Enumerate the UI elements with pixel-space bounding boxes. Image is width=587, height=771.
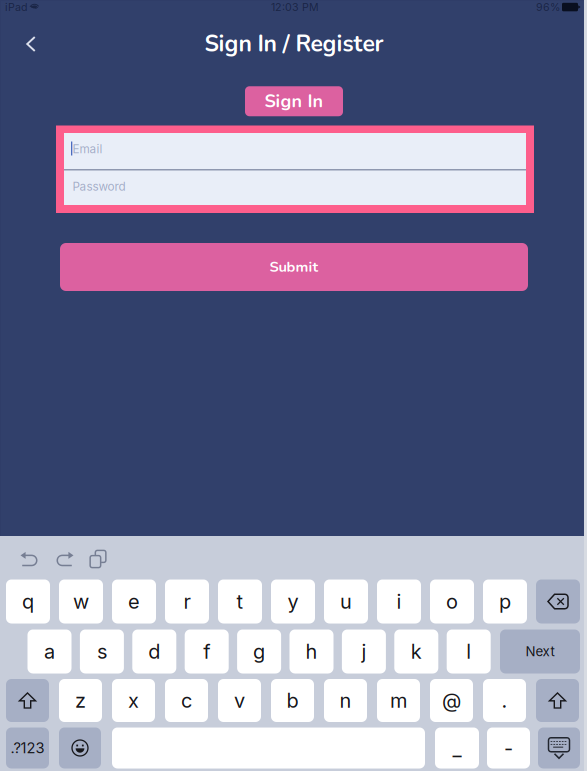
staticText: i [396,589,401,614]
button[interactable]: @ [430,679,473,722]
staticText: e [128,589,140,614]
button[interactable]: Sign In [245,86,343,116]
staticText: Sign In [264,89,323,114]
button[interactable]: . [483,679,526,722]
button[interactable]: o [430,579,474,623]
staticText: x [128,688,139,713]
button[interactable]: Next [500,629,580,673]
button[interactable]: Email [64,133,526,169]
button[interactable]: _ [435,727,479,768]
button[interactable]: u [324,579,368,623]
button[interactable]: Undo [14,546,44,572]
staticText: Next [525,643,554,659]
staticText: t [236,589,243,614]
staticText: p [499,589,511,614]
staticText: b [286,688,298,713]
staticText: 96% [536,0,560,13]
staticText: r [183,589,190,614]
staticText: l [466,639,471,664]
button[interactable]: k [394,629,438,673]
staticText: . [501,688,507,713]
button[interactable]: Shift [6,679,49,722]
staticText: @ [442,688,461,713]
button[interactable]: i [377,579,421,623]
button[interactable]: a [27,629,71,673]
staticText: f [203,639,210,664]
staticText: Sign In / Register [204,28,383,60]
staticText: w [73,589,89,614]
button[interactable]: Delete [536,579,580,623]
staticText: n [339,688,351,713]
staticText: g [253,639,265,664]
staticText: 12:03 PM [271,0,319,13]
staticText: d [148,639,160,664]
button[interactable]: Password [64,170,526,205]
staticText: c [181,688,192,713]
button[interactable]: Paste [83,546,113,572]
staticText: Submit [269,257,318,277]
button[interactable]: r [165,579,209,623]
button[interactable]: Submit [60,243,528,291]
button[interactable]: c [165,679,208,722]
button[interactable]: v [218,679,261,722]
staticText: - [504,736,513,760]
button[interactable]: h [289,629,333,673]
button[interactable]: Emoji [59,727,101,768]
button[interactable]: t [218,579,262,623]
button[interactable]: d [132,629,176,673]
button[interactable]: Numbers and symbols [6,727,49,768]
button[interactable]: n [324,679,367,722]
staticText: s [97,639,107,664]
button[interactable]: f [185,629,229,673]
button[interactable]: s [80,629,124,673]
button[interactable]: x [112,679,155,722]
button[interactable]: - [487,727,530,768]
button[interactable]: Redo [50,546,80,572]
staticText: q [22,589,34,614]
staticText: v [234,688,245,713]
staticText: z [75,688,86,713]
button[interactable]: e [112,579,156,623]
button[interactable]: z [59,679,102,722]
staticText: y [287,589,298,614]
staticText: Password [72,179,125,194]
button[interactable]: l [447,629,491,673]
staticText: j [361,639,366,664]
button[interactable]: Back [11,25,51,63]
staticText: Email [72,142,102,156]
staticText: .?123 [10,739,44,757]
button[interactable]: m [377,679,420,722]
staticText: a [44,639,55,664]
staticText: iPad [5,0,28,13]
staticText: h [305,639,317,664]
staticText: u [340,589,352,614]
button[interactable]: Hide Keyboard [538,727,580,768]
button[interactable]: j [342,629,386,673]
button[interactable]: Shift [536,679,579,722]
button[interactable]: g [237,629,281,673]
staticText: k [411,639,422,664]
button[interactable]: b [271,679,314,722]
staticText: o [446,589,458,614]
staticText: _ [452,736,461,760]
button[interactable]: q [6,579,50,623]
staticText: m [390,688,407,713]
button[interactable]: p [483,579,527,623]
button[interactable]: y [271,579,315,623]
button[interactable]: w [59,579,103,623]
